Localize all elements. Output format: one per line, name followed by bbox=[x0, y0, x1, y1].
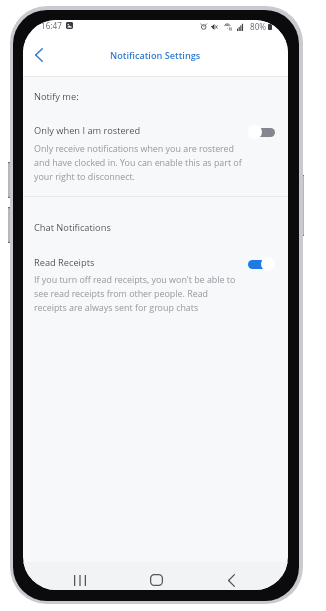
staticText: 16:47 bbox=[41, 20, 62, 31]
staticText: Only receive notifications when you are … bbox=[34, 142, 243, 183]
button[interactable]: Read receipts on bbox=[248, 257, 275, 271]
staticText: 80% bbox=[250, 21, 267, 32]
staticText: Notify me: bbox=[34, 90, 79, 103]
staticText: Read Receipts bbox=[34, 256, 95, 269]
staticText: Chat Notifications bbox=[34, 221, 111, 234]
button[interactable]: Back bbox=[218, 567, 244, 590]
staticText: Only when I am rostered bbox=[34, 124, 141, 137]
staticText: Notification Settings bbox=[110, 49, 201, 62]
button[interactable]: Recent apps bbox=[67, 567, 93, 590]
button[interactable]: Home bbox=[143, 567, 169, 590]
staticText: If you turn off read receipts, you won't… bbox=[34, 273, 243, 314]
button[interactable]: Back bbox=[26, 42, 52, 68]
button[interactable]: Only when rostered off bbox=[248, 125, 275, 139]
